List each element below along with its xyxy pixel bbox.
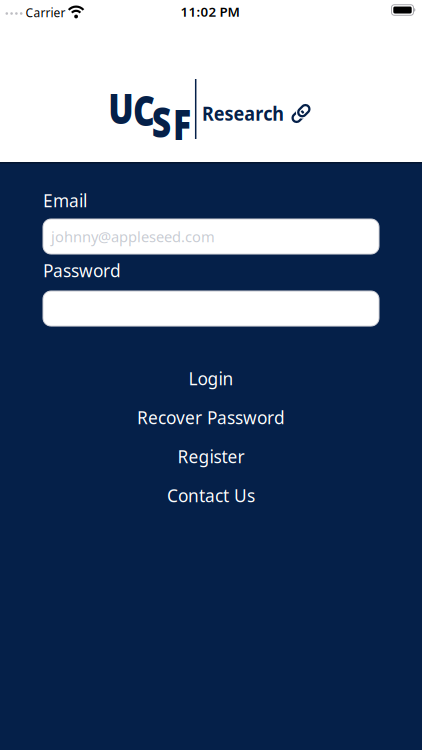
button[interactable]: Register [165,437,256,476]
staticText: S [149,93,174,149]
staticText: C [130,81,158,138]
button[interactable]: Recover Password [125,398,297,437]
button[interactable]: Contact Us [155,476,267,515]
staticText: U [105,79,137,136]
button[interactable]: Login [176,359,245,398]
staticText: Login [188,367,233,390]
staticText: 11:02 PM [180,3,239,20]
textField[interactable] [51,227,379,246]
staticText: Password [43,259,121,282]
staticText: Research [197,100,288,126]
staticText: Contact Us [167,484,255,507]
staticText: Recover Password [137,406,285,429]
staticText: Email [43,189,87,212]
staticText: Register [177,445,244,468]
staticText: johnny@appleseed.com [51,227,215,246]
staticText: F [170,95,193,152]
staticText: Carrier [25,4,65,20]
